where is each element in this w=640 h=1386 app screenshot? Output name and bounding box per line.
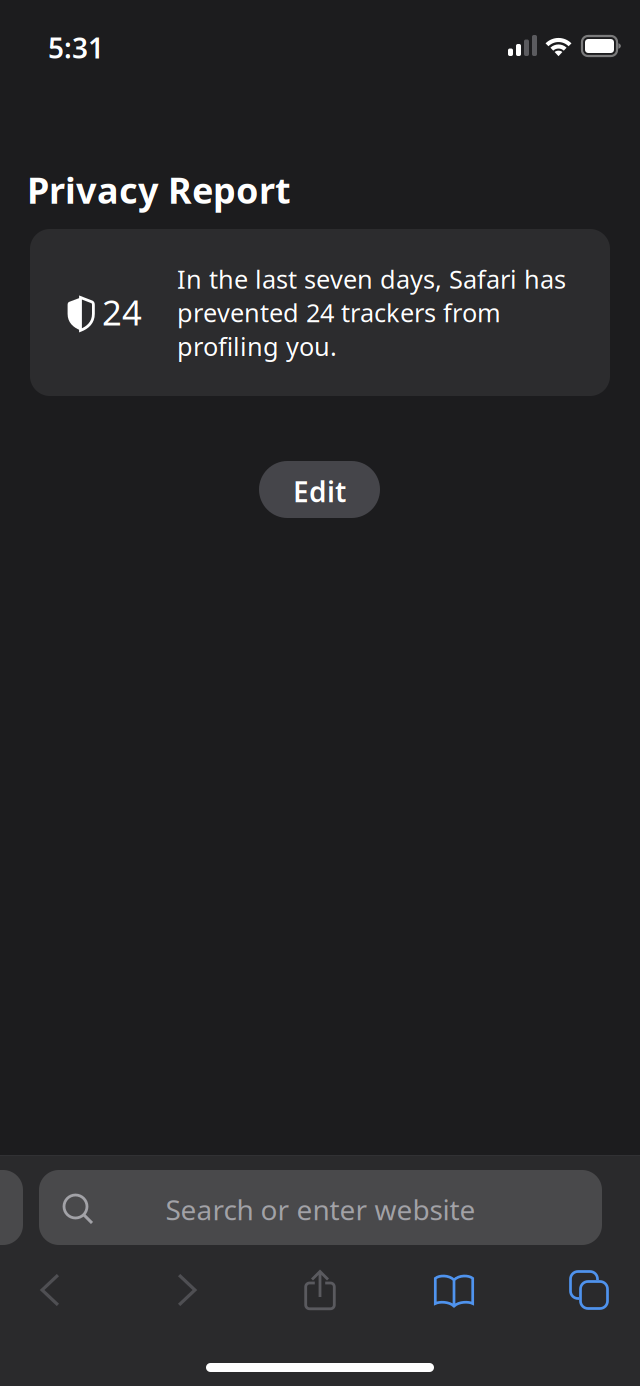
staticText: Edit	[293, 473, 346, 510]
button[interactable]: Search or enter website	[39, 1170, 602, 1245]
button[interactable]: Back	[4, 1258, 96, 1322]
button[interactable]: Bookmarks	[408, 1259, 500, 1323]
button[interactable]: Edit	[259, 461, 380, 518]
staticText: 24	[102, 289, 142, 335]
staticText: Privacy Report	[27, 166, 291, 214]
button[interactable]: Tabs	[543, 1258, 635, 1322]
button[interactable]: Share	[274, 1258, 366, 1322]
staticText: Search or enter website	[165, 1191, 475, 1228]
button[interactable]: Forward	[141, 1258, 233, 1322]
staticText: In the last seven days, Safari has preve…	[177, 262, 566, 363]
staticText: 5:31	[48, 29, 104, 66]
